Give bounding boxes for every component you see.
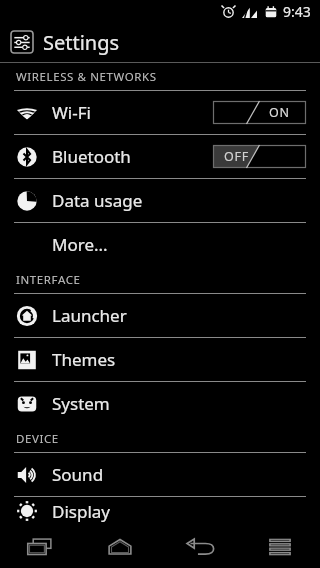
staticText: Bluetooth [52, 145, 131, 168]
button[interactable]: Data usage [0, 179, 320, 222]
staticText: Launcher [52, 304, 127, 327]
staticText: OFF [224, 148, 250, 165]
staticText: Settings [43, 29, 120, 56]
button[interactable]: Sound [0, 453, 320, 496]
button[interactable]: Recents [0, 525, 80, 568]
staticText: Display [52, 500, 110, 523]
staticText: System [52, 392, 110, 415]
staticText: Sound [52, 463, 104, 486]
staticText: Wi-Fi [52, 101, 91, 124]
button[interactable]: Themes [0, 338, 320, 381]
button[interactable]: Back [160, 525, 240, 568]
button[interactable]: More... [0, 223, 320, 266]
staticText: Themes [52, 348, 116, 371]
button[interactable]: Bluetooth off [213, 145, 306, 168]
staticText: 9:43 [283, 2, 311, 21]
staticText: ON [269, 104, 290, 121]
button[interactable]: Settings [0, 22, 320, 62]
staticText: Data usage [52, 189, 143, 212]
button[interactable]: Launcher [0, 294, 320, 337]
button[interactable]: Wi-Fi on [213, 101, 306, 124]
staticText: DEVICE [16, 431, 59, 447]
button[interactable]: Menu [240, 525, 320, 568]
button[interactable]: Wi-Fi [0, 91, 320, 134]
button[interactable]: Home [80, 525, 160, 568]
button[interactable]: Display [0, 497, 320, 525]
staticText: More... [52, 233, 108, 256]
button[interactable]: System [0, 382, 320, 425]
staticText: WIRELESS & NETWORKS [16, 69, 157, 85]
staticText: INTERFACE [16, 272, 81, 288]
button[interactable]: Bluetooth [0, 135, 320, 178]
